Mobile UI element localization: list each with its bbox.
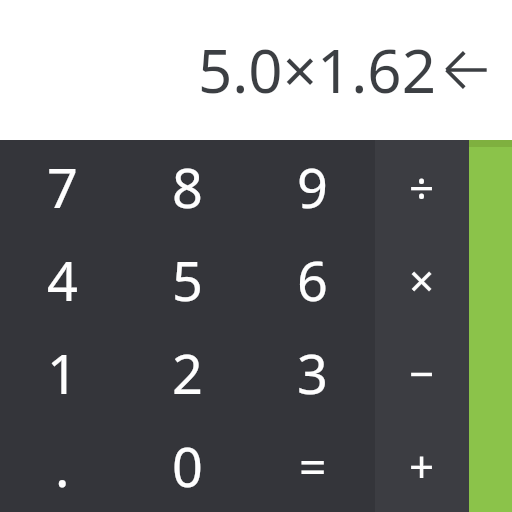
staticText: × xyxy=(409,250,435,310)
button[interactable]: − xyxy=(375,326,469,419)
staticText: 3 xyxy=(297,336,328,410)
button[interactable]: 9 xyxy=(250,140,375,233)
staticText: = xyxy=(299,433,327,498)
button[interactable]: 3 xyxy=(250,326,375,419)
staticText: 6 xyxy=(297,243,328,317)
staticText: 4 xyxy=(47,243,78,317)
button[interactable]: 7 xyxy=(0,140,125,233)
button[interactable]: 4 xyxy=(0,233,125,326)
staticText: + xyxy=(409,436,435,496)
button[interactable]: 0 xyxy=(125,419,250,512)
button[interactable]: . xyxy=(0,419,125,512)
button[interactable]: 5 xyxy=(125,233,250,326)
button[interactable]: 8 xyxy=(125,140,250,233)
button[interactable]: 2 xyxy=(125,326,250,419)
staticText: . xyxy=(55,429,70,503)
staticText: 5 xyxy=(172,243,203,317)
staticText: ÷ xyxy=(409,157,435,217)
staticText: − xyxy=(409,343,435,403)
button[interactable]: 1 xyxy=(0,326,125,419)
staticText: 9 xyxy=(297,150,328,224)
staticText: 8 xyxy=(172,150,203,224)
button[interactable]: × xyxy=(375,233,469,326)
button[interactable]: ÷ xyxy=(375,140,469,233)
button[interactable]: 6 xyxy=(250,233,375,326)
staticText: 2 xyxy=(172,336,203,410)
button[interactable]: = xyxy=(250,419,375,512)
staticText: 0 xyxy=(172,429,203,503)
button[interactable]: Backspace xyxy=(442,46,490,94)
button[interactable]: + xyxy=(375,419,469,512)
staticText: 1 xyxy=(47,336,78,410)
staticText: 5.0×1.62 xyxy=(197,29,436,111)
staticText: 7 xyxy=(47,150,78,224)
